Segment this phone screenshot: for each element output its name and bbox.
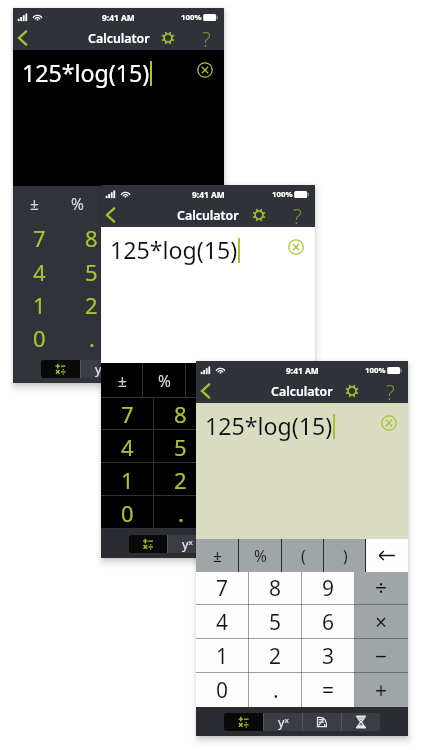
button[interactable]: 0 <box>196 673 249 707</box>
button[interactable]: Back <box>101 203 125 227</box>
button[interactable]: 2 <box>249 639 302 673</box>
button[interactable]: 8 <box>249 572 302 605</box>
staticText: × <box>282 432 295 462</box>
button[interactable]: + <box>355 673 408 707</box>
button[interactable]: Clear <box>197 62 213 78</box>
button[interactable]: Powers <box>264 713 302 731</box>
button[interactable]: ± <box>13 186 56 221</box>
button[interactable]: 0 <box>13 321 65 354</box>
button[interactable]: . <box>65 321 118 354</box>
button[interactable]: 7 <box>196 572 249 605</box>
staticText: ÷ <box>282 399 295 429</box>
button[interactable]: Back <box>196 379 220 403</box>
button[interactable]: − <box>355 639 408 673</box>
button[interactable]: Clear <box>381 415 397 431</box>
button[interactable]: ÷ <box>171 221 224 255</box>
button[interactable]: 6 <box>207 430 261 463</box>
button[interactable]: . <box>249 673 302 707</box>
button[interactable]: Basic operations <box>224 713 263 731</box>
button[interactable]: 3 <box>302 639 355 673</box>
button[interactable]: ÷ <box>261 398 315 430</box>
button[interactable]: 6 <box>118 255 171 288</box>
button[interactable]: Back <box>13 26 37 50</box>
button[interactable]: Trigonometry <box>303 713 341 731</box>
button[interactable]: Powers <box>168 535 207 553</box>
button[interactable]: Clear <box>288 239 304 255</box>
button[interactable]: 7 <box>101 398 154 430</box>
button[interactable]: . <box>154 496 207 529</box>
button[interactable]: 2 <box>65 288 118 321</box>
button[interactable]: ± <box>101 363 143 398</box>
staticText: 6 <box>138 257 151 287</box>
button[interactable]: ) <box>229 363 272 398</box>
staticText: 100% <box>365 365 386 376</box>
button[interactable]: History <box>342 713 380 731</box>
button[interactable]: History <box>248 535 287 553</box>
button[interactable]: 5 <box>249 605 302 639</box>
button[interactable]: Backspace <box>366 539 408 572</box>
button[interactable]: Trigonometry <box>208 535 247 553</box>
button[interactable]: ÷ <box>355 572 408 605</box>
button[interactable]: 6 <box>302 605 355 639</box>
staticText: 9 <box>322 574 335 603</box>
button[interactable]: Help <box>287 203 307 227</box>
button[interactable]: ← <box>182 186 224 221</box>
button[interactable]: % <box>56 186 98 221</box>
button[interactable]: ( <box>186 363 229 398</box>
button[interactable]: 5 <box>65 255 118 288</box>
button[interactable]: 5 <box>154 430 207 463</box>
staticText: 6 <box>322 608 335 637</box>
button[interactable]: % <box>239 539 282 572</box>
button[interactable]: 9 <box>118 221 171 255</box>
button[interactable]: 1 <box>13 288 65 321</box>
button[interactable]: Basic operations <box>41 360 80 378</box>
button[interactable]: 1 <box>196 639 249 673</box>
button[interactable]: 7 <box>13 221 65 255</box>
button[interactable]: Settings <box>249 203 269 227</box>
button[interactable]: Help <box>380 379 400 403</box>
staticText: ÷ <box>191 223 204 253</box>
staticText: ( <box>117 193 122 214</box>
button[interactable]: Powers <box>81 360 119 378</box>
button[interactable]: 4 <box>196 605 249 639</box>
button[interactable]: 1 <box>101 463 154 496</box>
button[interactable]: ( <box>282 539 324 572</box>
button[interactable]: 2 <box>154 463 207 496</box>
button[interactable]: ← <box>272 363 315 398</box>
button[interactable]: ) <box>140 186 182 221</box>
button[interactable]: 4 <box>13 255 65 288</box>
button[interactable]: × <box>171 255 224 288</box>
button[interactable]: Settings <box>342 379 362 403</box>
button[interactable]: 8 <box>154 398 207 430</box>
button[interactable]: Settings <box>158 26 178 50</box>
button[interactable]: 9 <box>207 398 261 430</box>
button[interactable]: 4 <box>101 430 154 463</box>
button[interactable]: ) <box>324 539 366 572</box>
button[interactable]: History <box>159 360 197 378</box>
button[interactable]: × <box>261 430 315 463</box>
button[interactable]: Trigonometry <box>120 360 158 378</box>
button[interactable]: 8 <box>65 221 118 255</box>
staticText: 8 <box>85 223 98 253</box>
button[interactable]: ( <box>98 186 140 221</box>
button[interactable]: % <box>143 363 186 398</box>
button[interactable]: 0 <box>101 496 154 529</box>
button[interactable]: ± <box>196 539 239 572</box>
button[interactable]: = <box>302 673 355 707</box>
button[interactable]: × <box>355 605 408 639</box>
staticText: 2 <box>269 642 282 671</box>
button[interactable]: 9 <box>302 572 355 605</box>
staticText: yˣ <box>95 361 106 378</box>
button[interactable]: Help <box>196 26 216 50</box>
button[interactable]: Basic operations <box>129 535 167 553</box>
